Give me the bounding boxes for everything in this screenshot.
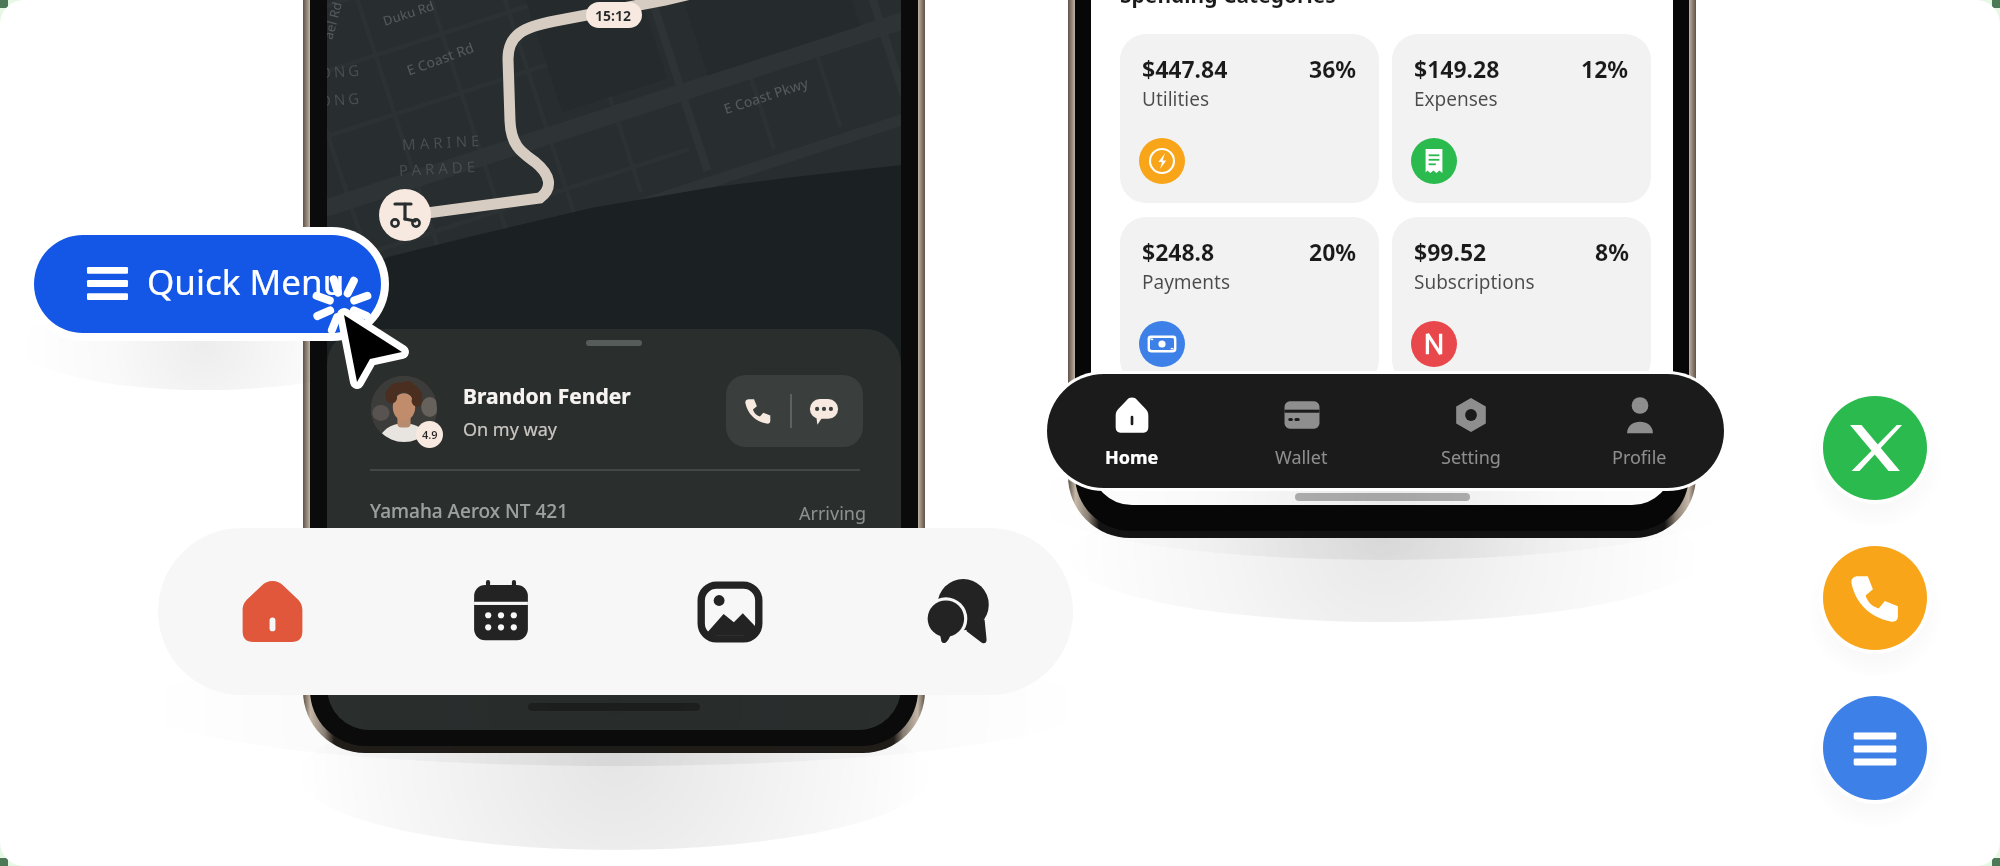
staticText: Yamaha Aerox NT 421 [370, 498, 569, 524]
button[interactable]: Message [792, 375, 856, 447]
button[interactable]: Home [1047, 374, 1217, 488]
staticText: $149.28 [1414, 53, 1500, 84]
staticText: 12% [1581, 53, 1629, 84]
staticText: ONG [327, 87, 364, 110]
staticText: ONG [327, 59, 364, 82]
staticText: Duku Rd [380, 0, 436, 30]
button[interactable]: Photos [615, 528, 844, 695]
button[interactable]: Profile [1555, 374, 1724, 488]
staticText: Arriving [799, 501, 866, 526]
staticText: Wallet [1275, 445, 1328, 470]
button[interactable]: Open menu [1823, 696, 1927, 800]
staticText: 15:12 [595, 6, 631, 25]
staticText: 8% [1595, 236, 1629, 267]
staticText: Setting [1441, 445, 1501, 470]
button[interactable]: $447.84 [1120, 34, 1379, 203]
staticText: E Coast Pkwy [721, 73, 811, 118]
staticText: Utilities [1142, 86, 1210, 112]
staticText: Spending Categories [1120, 0, 1336, 10]
staticText: ael Rd [327, 0, 346, 41]
staticText: Profile [1612, 445, 1667, 470]
button[interactable]: Home [158, 528, 386, 695]
button[interactable]: Calendar [386, 528, 615, 695]
staticText: 4.9 [422, 427, 438, 442]
staticText: 36% [1309, 53, 1357, 84]
staticText: $99.52 [1414, 236, 1487, 267]
button[interactable]: Call [1823, 546, 1927, 650]
button[interactable]: $99.52 [1392, 217, 1651, 386]
staticText: Payments [1142, 269, 1231, 295]
staticText: Subscriptions [1414, 269, 1535, 295]
staticText: PARADE [398, 156, 480, 180]
button[interactable]: Messages [844, 528, 1073, 695]
staticText: Brandon Fender [463, 382, 631, 411]
staticText: MARINE [401, 130, 484, 154]
staticText: $447.84 [1142, 53, 1228, 84]
staticText: Quick Menu [147, 258, 345, 306]
button[interactable]: $149.28 [1392, 34, 1651, 203]
button[interactable]: Wallet [1217, 374, 1386, 488]
staticText: E Coast Rd [404, 37, 477, 79]
staticText: 20% [1309, 236, 1357, 267]
button[interactable]: Share on X [1823, 396, 1927, 500]
staticText: On my way [463, 417, 557, 442]
button[interactable]: $248.8 [1120, 217, 1379, 386]
staticText: $248.8 [1142, 236, 1215, 267]
button[interactable]: Setting [1386, 374, 1555, 488]
staticText: Home [1105, 445, 1159, 470]
staticText: Expenses [1414, 86, 1498, 112]
button[interactable]: Call [726, 375, 790, 447]
button[interactable]: Quick Menu [34, 235, 381, 333]
